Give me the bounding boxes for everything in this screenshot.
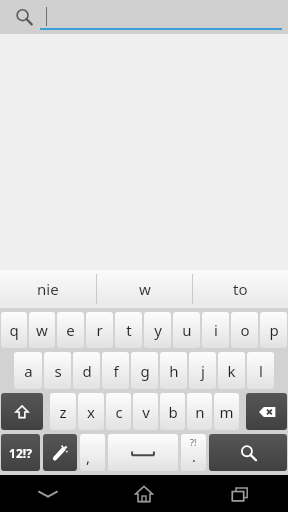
button[interactable]: j bbox=[189, 352, 216, 389]
button[interactable]: s bbox=[44, 352, 71, 389]
button[interactable]: e bbox=[57, 312, 84, 348]
button[interactable]: d bbox=[73, 352, 100, 389]
button[interactable]: Voice or emoji bbox=[43, 434, 77, 471]
button[interactable]: q bbox=[1, 312, 27, 348]
button[interactable]: a bbox=[14, 352, 42, 389]
button[interactable]: m bbox=[214, 393, 239, 430]
button[interactable]: i bbox=[202, 312, 229, 348]
staticText: c bbox=[115, 402, 123, 422]
button[interactable]: Recent apps bbox=[192, 475, 288, 512]
staticText: f bbox=[113, 361, 119, 381]
staticText: q bbox=[9, 320, 19, 340]
staticText: x bbox=[87, 402, 95, 422]
staticText: 12!? bbox=[9, 445, 32, 461]
button[interactable]: Search bbox=[209, 434, 287, 471]
staticText: . bbox=[192, 447, 196, 466]
staticText: p bbox=[269, 320, 279, 340]
button[interactable]: to bbox=[193, 270, 288, 308]
button[interactable]: 12!? bbox=[1, 434, 40, 471]
button[interactable]: nie bbox=[0, 270, 96, 308]
staticText: e bbox=[66, 320, 75, 340]
staticText: t bbox=[126, 320, 132, 340]
staticText: v bbox=[142, 402, 150, 422]
button[interactable]: l bbox=[247, 352, 274, 389]
staticText: g bbox=[140, 361, 150, 381]
button[interactable]: Shift bbox=[1, 393, 43, 430]
button[interactable]: Search bbox=[12, 5, 36, 29]
staticText: i bbox=[214, 320, 218, 340]
button[interactable]: c bbox=[106, 393, 131, 430]
staticText: l bbox=[259, 361, 263, 381]
staticText: o bbox=[240, 320, 250, 340]
button[interactable]: , bbox=[80, 434, 105, 471]
staticText: b bbox=[168, 402, 178, 422]
staticText: r bbox=[96, 320, 103, 340]
button[interactable]: p bbox=[260, 312, 287, 348]
button[interactable]: v bbox=[133, 393, 158, 430]
button[interactable]: o bbox=[231, 312, 258, 348]
button[interactable]: Backspace bbox=[246, 393, 287, 430]
staticText: w bbox=[139, 279, 151, 299]
button[interactable]: k bbox=[218, 352, 245, 389]
staticText: h bbox=[169, 361, 179, 381]
staticText: s bbox=[54, 361, 62, 381]
staticText: to bbox=[233, 279, 248, 299]
button[interactable]: Space bbox=[108, 434, 178, 471]
staticText: u bbox=[182, 320, 192, 340]
button[interactable]: z bbox=[50, 393, 76, 430]
button[interactable]: ?! bbox=[181, 434, 206, 471]
button[interactable]: f bbox=[102, 352, 129, 389]
button[interactable]: r bbox=[86, 312, 113, 348]
button[interactable]: h bbox=[160, 352, 187, 389]
staticText: ?! bbox=[190, 436, 197, 448]
button[interactable]: Hide keyboard bbox=[0, 475, 96, 512]
button[interactable]: t bbox=[115, 312, 142, 348]
staticText: j bbox=[201, 361, 205, 381]
button[interactable]: w bbox=[97, 270, 192, 308]
button[interactable]: x bbox=[78, 393, 104, 430]
staticText: y bbox=[154, 320, 162, 340]
staticText: w bbox=[36, 320, 48, 340]
button[interactable]: y bbox=[144, 312, 171, 348]
staticText: n bbox=[195, 402, 205, 422]
button[interactable]: g bbox=[131, 352, 158, 389]
button[interactable]: u bbox=[173, 312, 200, 348]
staticText: z bbox=[59, 402, 67, 422]
staticText: a bbox=[24, 361, 33, 381]
staticText: nie bbox=[37, 279, 59, 299]
staticText: , bbox=[86, 447, 91, 467]
staticText: m bbox=[219, 402, 234, 422]
button[interactable]: w bbox=[29, 312, 55, 348]
staticText: d bbox=[82, 361, 92, 381]
staticText: k bbox=[227, 361, 236, 381]
button[interactable]: n bbox=[187, 393, 212, 430]
button[interactable]: b bbox=[160, 393, 185, 430]
button[interactable]: Home bbox=[96, 475, 192, 512]
